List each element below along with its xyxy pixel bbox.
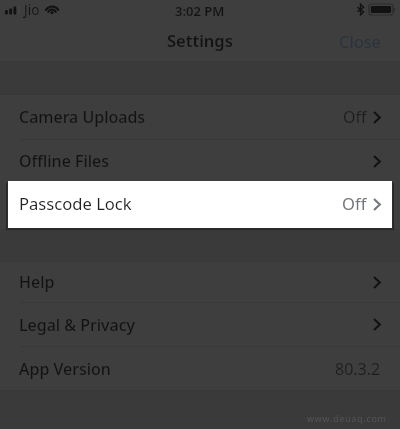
staticText: Offline Files — [19, 150, 110, 172]
staticText: www.deuaq.com — [307, 412, 387, 424]
staticText: 80.3.2 — [335, 358, 381, 380]
button[interactable]: Legal & Privacy — [0, 303, 400, 346]
button[interactable]: Help — [0, 262, 400, 302]
button[interactable]: App Version — [0, 347, 400, 390]
staticText: Close — [339, 30, 381, 52]
staticText: Help — [19, 271, 55, 293]
button[interactable]: Close — [339, 30, 381, 52]
other: Cellular signal — [5, 5, 21, 15]
staticText: Jio — [24, 1, 40, 19]
staticText: Passcode Lock — [19, 192, 132, 215]
staticText: Camera Uploads — [19, 106, 146, 128]
staticText: Settings — [167, 29, 233, 51]
staticText: Off — [342, 192, 367, 215]
staticText: Legal & Privacy — [19, 314, 135, 336]
staticText: App Version — [19, 358, 111, 380]
button[interactable]: Camera Uploads — [0, 95, 400, 139]
staticText: 3:02 PM — [175, 2, 225, 20]
button[interactable]: Passcode Lock — [8, 181, 392, 228]
other: Battery — [369, 4, 395, 15]
button[interactable]: Offline Files — [0, 140, 400, 182]
other: Bluetooth — [357, 4, 364, 15]
staticText: Off — [343, 106, 367, 128]
other: Wi-Fi — [45, 4, 59, 14]
